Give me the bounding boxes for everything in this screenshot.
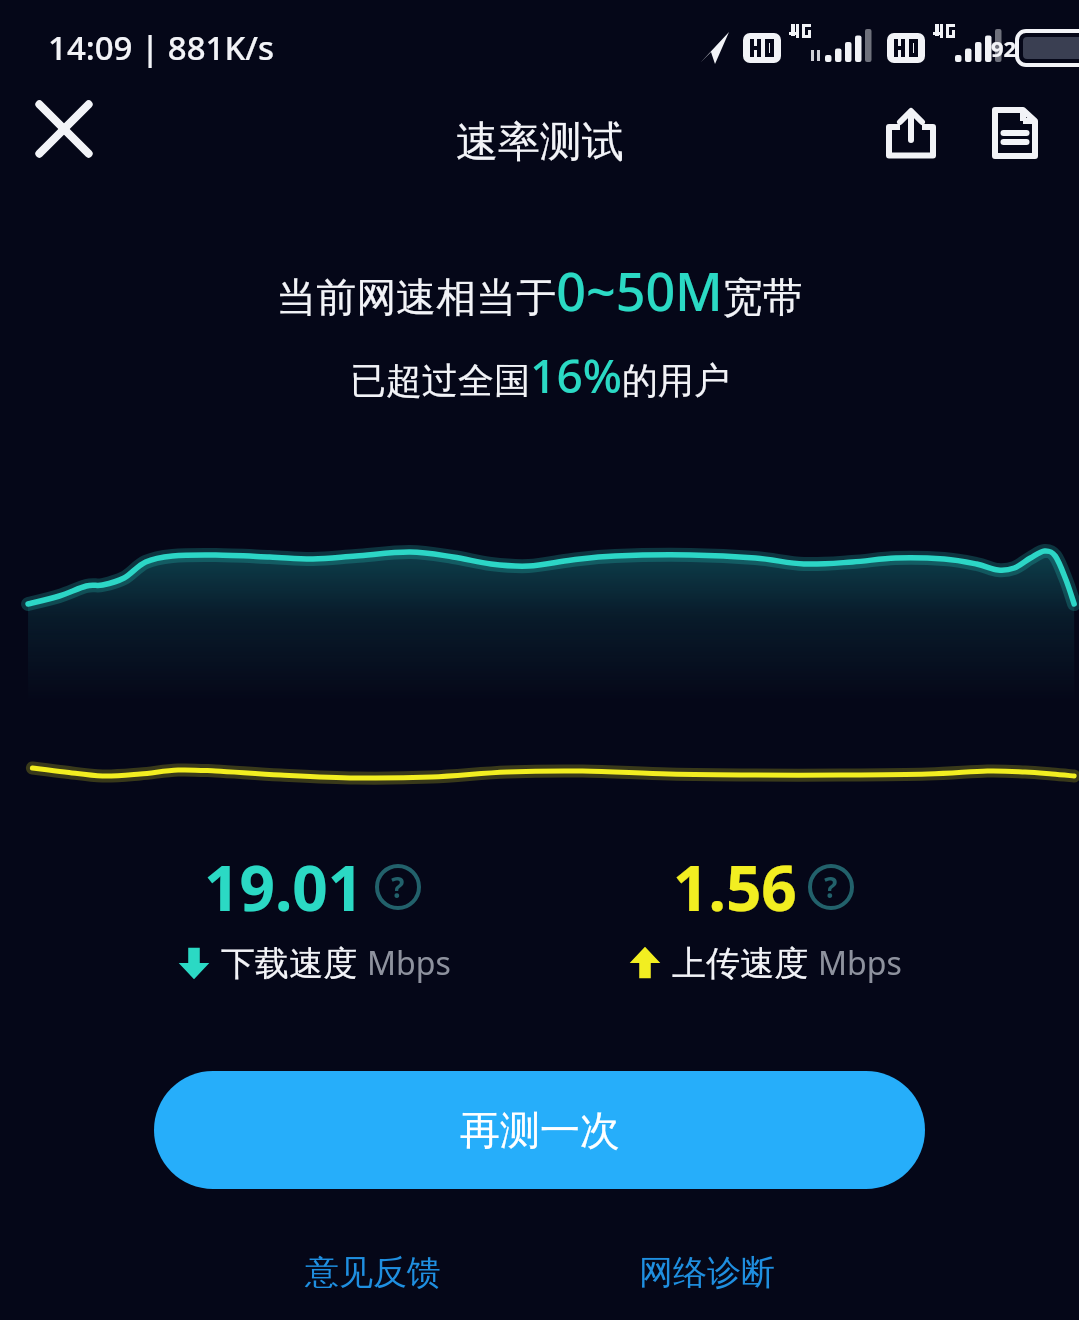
staticText: Mbps xyxy=(367,941,451,985)
button[interactable]: 再测一次 xyxy=(154,1071,925,1189)
button[interactable]: Report xyxy=(971,89,1059,177)
staticText: Mbps xyxy=(818,941,902,985)
staticText: 1.56 xyxy=(673,845,797,929)
button[interactable]: Help xyxy=(805,861,857,913)
staticText: 意见反馈 xyxy=(305,1251,441,1294)
staticText: 14:09 | 881K/s xyxy=(48,25,275,70)
staticText: 下载速度 xyxy=(221,942,357,985)
button[interactable]: 意见反馈 xyxy=(281,1243,465,1302)
staticText: 网络诊断 xyxy=(639,1251,775,1294)
button[interactable]: Close xyxy=(16,81,112,177)
button[interactable]: Share xyxy=(867,89,955,177)
staticText: 92 xyxy=(991,33,1017,63)
staticText: ? xyxy=(391,868,405,906)
button[interactable]: Help xyxy=(372,861,424,913)
staticText: 已超过全国16%的用户 xyxy=(350,344,730,407)
staticText: 19.01 xyxy=(204,845,364,929)
staticText: 再测一次 xyxy=(460,1105,620,1155)
staticText: 当前网速相当于0~50M宽带 xyxy=(276,255,803,326)
staticText: 上传速度 xyxy=(672,942,808,985)
staticText: 速率测试 xyxy=(456,116,624,169)
staticText: ? xyxy=(824,868,838,906)
button[interactable]: 网络诊断 xyxy=(615,1243,799,1302)
